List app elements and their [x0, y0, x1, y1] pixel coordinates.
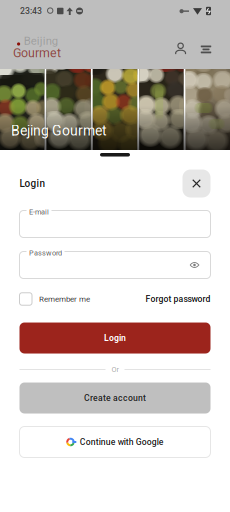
staticText: Login: [19, 178, 45, 189]
staticText: Gourmet: [13, 46, 61, 60]
button[interactable]: Remember me: [19, 292, 90, 306]
staticText: Beijing: [24, 34, 58, 48]
staticText: Forgot password: [145, 294, 210, 304]
staticText: Bejing Gourmet: [11, 123, 107, 139]
staticText: Create account: [84, 393, 146, 403]
staticText: 23:43: [20, 6, 42, 16]
staticText: Password: [29, 249, 62, 257]
button[interactable]: Menu: [200, 32, 212, 58]
button[interactable]: Create account: [19, 382, 210, 413]
staticText: Remember me: [39, 294, 90, 304]
staticText: Or: [111, 365, 118, 374]
staticText: Continue with Google: [80, 437, 164, 447]
button[interactable]: Continue with Google: [19, 426, 210, 457]
button[interactable]: Login: [19, 322, 210, 353]
button[interactable]: Account: [172, 32, 190, 58]
button[interactable]: Close: [182, 169, 210, 197]
staticText: E-mail: [29, 208, 49, 216]
staticText: Login: [104, 333, 126, 343]
button[interactable]: Forgot password: [145, 292, 210, 306]
